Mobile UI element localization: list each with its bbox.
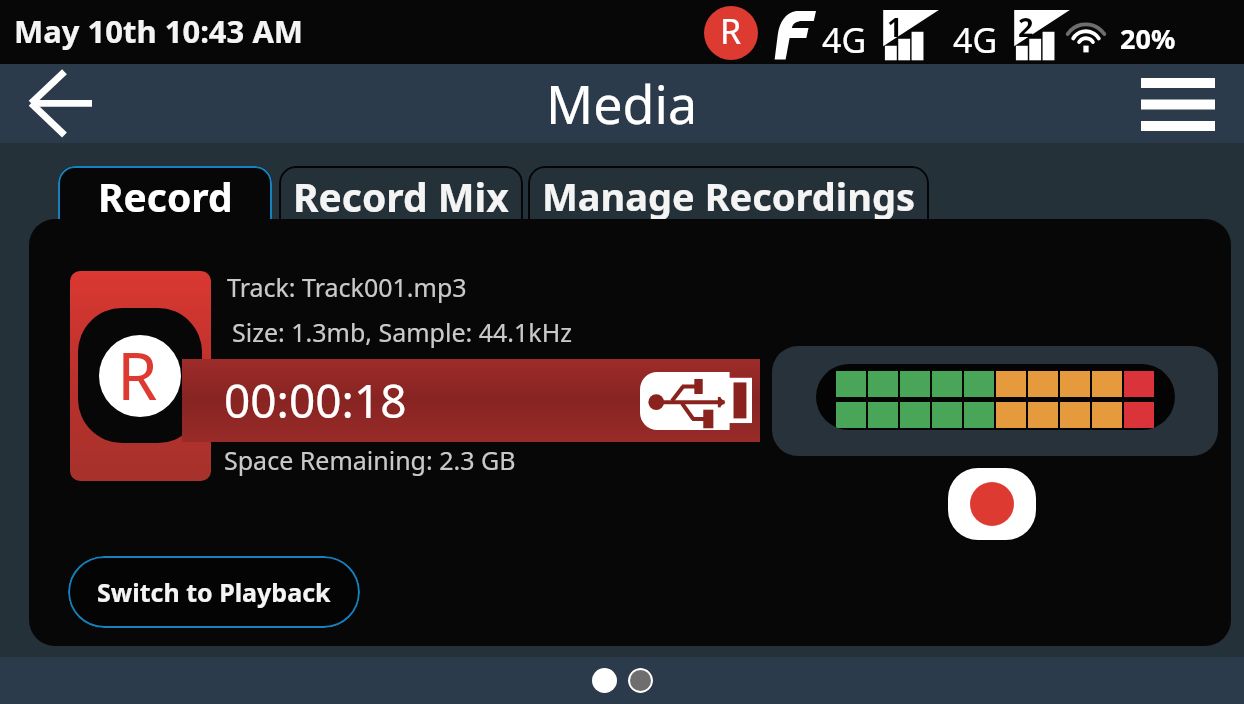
- staticText: R: [117, 335, 158, 413]
- button[interactable]: [628, 668, 653, 693]
- button[interactable]: Record: [58, 166, 272, 222]
- button[interactable]: Menu: [1134, 66, 1222, 142]
- button[interactable]: Record: [948, 468, 1036, 540]
- staticText: 1: [887, 8, 903, 45]
- button[interactable]: Record Mix: [279, 166, 523, 222]
- staticText: 20%: [1120, 20, 1176, 57]
- button[interactable]: Back: [17, 66, 103, 142]
- staticText: 00:00:18: [224, 369, 407, 432]
- staticText: Switch to Playback: [97, 575, 331, 609]
- staticText: Space Remaining: 2.3 GB: [224, 443, 516, 477]
- staticText: Size: 1.3mb, Sample: 44.1kHz: [232, 315, 572, 349]
- staticText: Manage Recordings: [542, 170, 916, 222]
- staticText: Record: [98, 170, 233, 222]
- staticText: R: [720, 8, 742, 54]
- staticText: 2: [1018, 8, 1034, 45]
- staticText: May 10th 10:43 AM: [14, 10, 304, 52]
- button[interactable]: Manage Recordings: [528, 166, 929, 222]
- staticText: Record Mix: [293, 170, 509, 222]
- button[interactable]: [592, 668, 617, 693]
- staticText: 4G: [822, 17, 867, 63]
- button[interactable]: Switch to Playback: [68, 556, 360, 628]
- staticText: Media: [546, 68, 698, 139]
- staticText: 4G: [953, 17, 998, 63]
- staticText: Track: Track001.mp3: [227, 270, 467, 304]
